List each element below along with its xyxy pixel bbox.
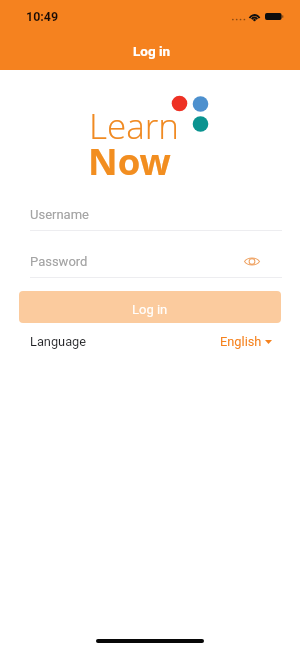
staticText: Now [88, 136, 171, 186]
button[interactable]: Log in [19, 291, 281, 323]
staticText: Learn [89, 102, 179, 150]
staticText: 10:49 [26, 9, 59, 24]
staticText: Language [30, 334, 87, 349]
button[interactable]: Show password [242, 252, 262, 270]
staticText: English [220, 334, 262, 349]
staticText: Password [30, 254, 88, 269]
button[interactable]: Language [19, 328, 281, 354]
staticText: Username [30, 207, 89, 222]
staticText: Log in [132, 302, 168, 317]
staticText: Log in [133, 43, 171, 59]
